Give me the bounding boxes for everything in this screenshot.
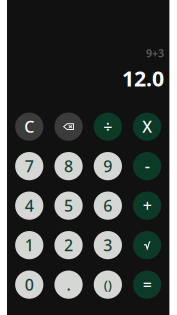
staticText: 8	[64, 155, 73, 177]
button[interactable]: =	[133, 270, 161, 299]
staticText: 6	[103, 195, 112, 216]
staticText: 4	[25, 195, 34, 216]
staticText: 7	[25, 155, 34, 177]
button[interactable]: 7	[15, 152, 43, 180]
staticText: =	[143, 274, 152, 295]
button[interactable]: 8	[54, 152, 83, 180]
button[interactable]: 5	[54, 191, 83, 220]
button[interactable]: 4	[15, 191, 43, 220]
button[interactable]: X	[133, 112, 161, 141]
staticText: 9+3	[146, 46, 164, 60]
staticText: +	[143, 195, 152, 216]
staticText: ÷	[103, 116, 112, 137]
button[interactable]: 3	[94, 231, 122, 259]
button[interactable]: 1	[15, 231, 43, 259]
button[interactable]: Delete	[54, 112, 83, 141]
button[interactable]: -	[133, 152, 161, 180]
button[interactable]: Square root	[133, 231, 161, 259]
staticText: 9	[103, 155, 112, 177]
staticText: -	[145, 155, 150, 177]
button[interactable]: ÷	[94, 112, 122, 141]
staticText: X	[142, 116, 152, 137]
staticText: ()	[104, 276, 112, 293]
staticText: 5	[64, 195, 73, 216]
staticText: .	[67, 274, 71, 295]
button[interactable]: 6	[94, 191, 122, 220]
staticText: 0	[25, 274, 34, 295]
button[interactable]: C	[15, 112, 43, 141]
button[interactable]: ()	[94, 270, 122, 299]
button[interactable]: .	[54, 270, 83, 299]
button[interactable]: +	[133, 191, 161, 220]
staticText: C	[24, 116, 34, 137]
staticText: 2	[64, 234, 73, 256]
button[interactable]: 9	[94, 152, 122, 180]
staticText: 3	[103, 234, 112, 256]
button[interactable]: 0	[15, 270, 43, 299]
button[interactable]: 2	[54, 231, 83, 259]
staticText: 1	[25, 234, 34, 256]
staticText: 12.0	[122, 64, 164, 92]
